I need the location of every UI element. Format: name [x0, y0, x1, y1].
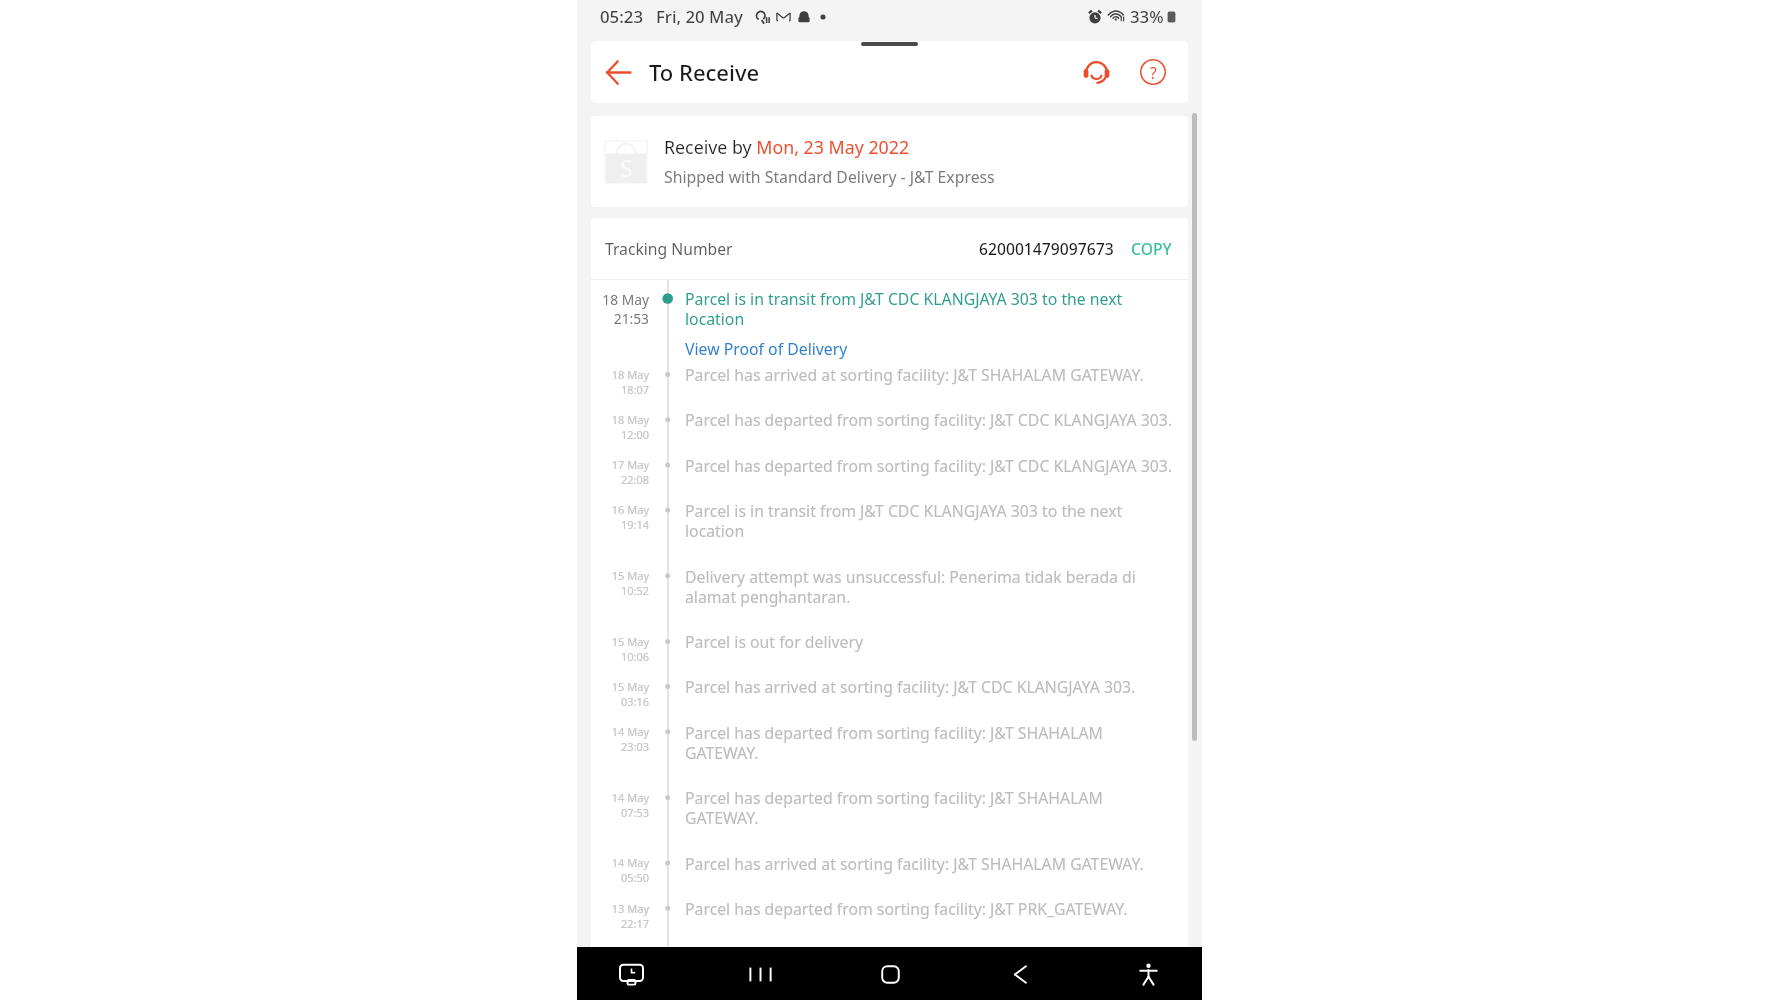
staticText: Fri, 20 May [656, 5, 743, 28]
staticText: 22:08 [620, 472, 649, 487]
button[interactable]: Recent apps [738, 952, 782, 996]
staticText: Parcel has departed from sorting facilit… [685, 898, 1128, 920]
staticText: Shipped with Standard Delivery - J&T Exp… [664, 166, 995, 188]
staticText: 16 May [611, 502, 649, 517]
staticText: 17 May [611, 457, 649, 472]
staticText: 14 May [611, 790, 649, 805]
staticText: 10:06 [620, 649, 649, 664]
staticText: 18 May [611, 367, 649, 382]
staticText: Parcel has departed from sorting facilit… [685, 455, 1173, 477]
button[interactable]: Home [868, 952, 912, 996]
staticText: Parcel has departed from sorting facilit… [685, 787, 1103, 829]
staticText: Parcel has departed from sorting facilit… [685, 409, 1173, 431]
staticText: Parcel has arrived at sorting facility: … [685, 364, 1144, 386]
staticText: 12:00 [620, 427, 649, 442]
staticText: 14 May [611, 855, 649, 870]
button[interactable]: Screenshot [609, 952, 653, 996]
staticText: 22:17 [620, 916, 649, 931]
staticText: COPY [1131, 238, 1172, 259]
staticText: 07:53 [620, 805, 649, 820]
staticText: Parcel has departed from sorting facilit… [685, 722, 1103, 764]
staticText: 14 May [611, 724, 649, 739]
staticText: Tracking Number [605, 238, 733, 259]
staticText: 33% [1130, 5, 1164, 28]
staticText: Receive by Mon, 23 May 2022 [664, 135, 910, 159]
staticText: 23:03 [620, 739, 649, 754]
staticText: 620001479097673 [979, 238, 1114, 259]
button[interactable]: Accessibility [1126, 952, 1170, 996]
staticText: Delivery attempt was unsuccessful: Pener… [685, 566, 1136, 608]
staticText: 15 May [611, 568, 649, 583]
staticText: Parcel has arrived at sorting facility: … [685, 676, 1136, 698]
staticText: 03:16 [620, 694, 649, 709]
staticText: Parcel is out for delivery [685, 631, 864, 653]
staticText: To Receive [649, 57, 760, 87]
staticText: 05:23 [600, 5, 643, 28]
staticText: 21:53 [613, 309, 649, 328]
staticText: 13 May [611, 901, 649, 916]
button[interactable]: Chat support [1076, 52, 1116, 92]
staticText: 18:07 [620, 382, 649, 397]
staticText: S [620, 152, 633, 183]
button[interactable]: Help [1133, 52, 1173, 92]
button[interactable]: Back [997, 952, 1041, 996]
staticText: Parcel is in transit from J&T CDC KLANGJ… [685, 288, 1182, 330]
staticText: View Proof of Delivery [685, 338, 848, 360]
button[interactable]: View Proof of Delivery [685, 338, 848, 360]
staticText: 19:14 [620, 517, 649, 532]
button[interactable]: S [591, 116, 1188, 207]
button[interactable]: Back [599, 53, 637, 91]
staticText: Parcel is in transit from J&T CDC KLANGJ… [685, 500, 1123, 542]
staticText: 10:52 [620, 583, 649, 598]
staticText: ? [1150, 62, 1157, 83]
staticText: 05:50 [620, 870, 649, 885]
staticText: Parcel has arrived at sorting facility: … [685, 853, 1144, 875]
staticText: 15 May [611, 679, 649, 694]
button[interactable]: COPY [1131, 238, 1172, 259]
staticText: 15 May [611, 634, 649, 649]
staticText: 18 May [611, 412, 649, 427]
staticText: 18 May [602, 290, 649, 309]
